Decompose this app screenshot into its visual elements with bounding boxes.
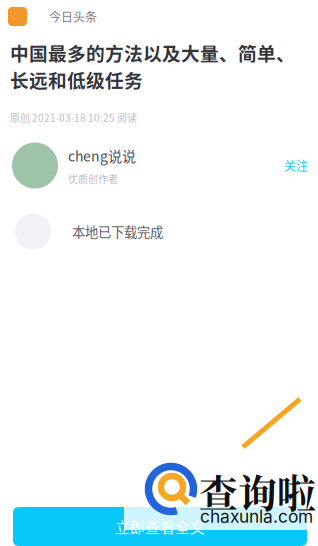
staticText: 原创 2021-03-18 10:25 阅读 [10, 110, 137, 125]
staticText: 优质创作者 [68, 171, 118, 186]
staticText: 今日头条 [49, 8, 97, 25]
staticText: chaxunla.com [200, 506, 313, 527]
button[interactable]: 立即查看全文 [13, 507, 307, 546]
staticText: 查询啦 [199, 463, 316, 519]
staticText: 中国最多的方法以及大量、简单、长远和低级任务 [10, 39, 295, 93]
staticText: 关注 [284, 157, 308, 174]
staticText: 本地已下载完成 [72, 222, 163, 241]
staticText: cheng说说 [68, 145, 136, 165]
staticText: 立即查看全文 [115, 516, 205, 537]
